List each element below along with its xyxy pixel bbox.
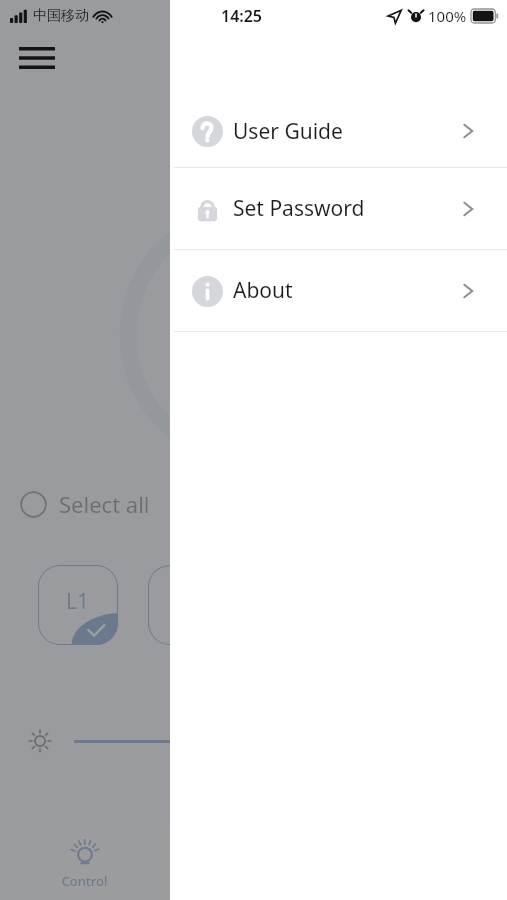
staticText: L1 <box>66 587 90 616</box>
staticText: Set Password <box>233 194 365 223</box>
staticText: 100% <box>428 6 467 26</box>
button[interactable] <box>0 0 170 900</box>
button[interactable]: Timer <box>169 828 338 900</box>
button[interactable]: Select all <box>20 487 150 521</box>
button[interactable]: Set Password <box>170 168 507 249</box>
staticText: 中国移动 <box>33 7 89 25</box>
button[interactable]: L1 <box>38 565 118 645</box>
staticText: User Guide <box>233 117 343 146</box>
staticText: Select all <box>59 489 150 519</box>
staticText: 14:25 <box>221 5 263 27</box>
staticText: Control <box>61 872 108 890</box>
button[interactable]: User Guide <box>170 95 507 167</box>
button[interactable]: Menu <box>8 36 66 80</box>
staticText: About <box>233 276 293 305</box>
button[interactable]: About <box>170 250 507 331</box>
button[interactable]: L2 <box>148 565 228 645</box>
button[interactable]: Control <box>0 828 169 900</box>
